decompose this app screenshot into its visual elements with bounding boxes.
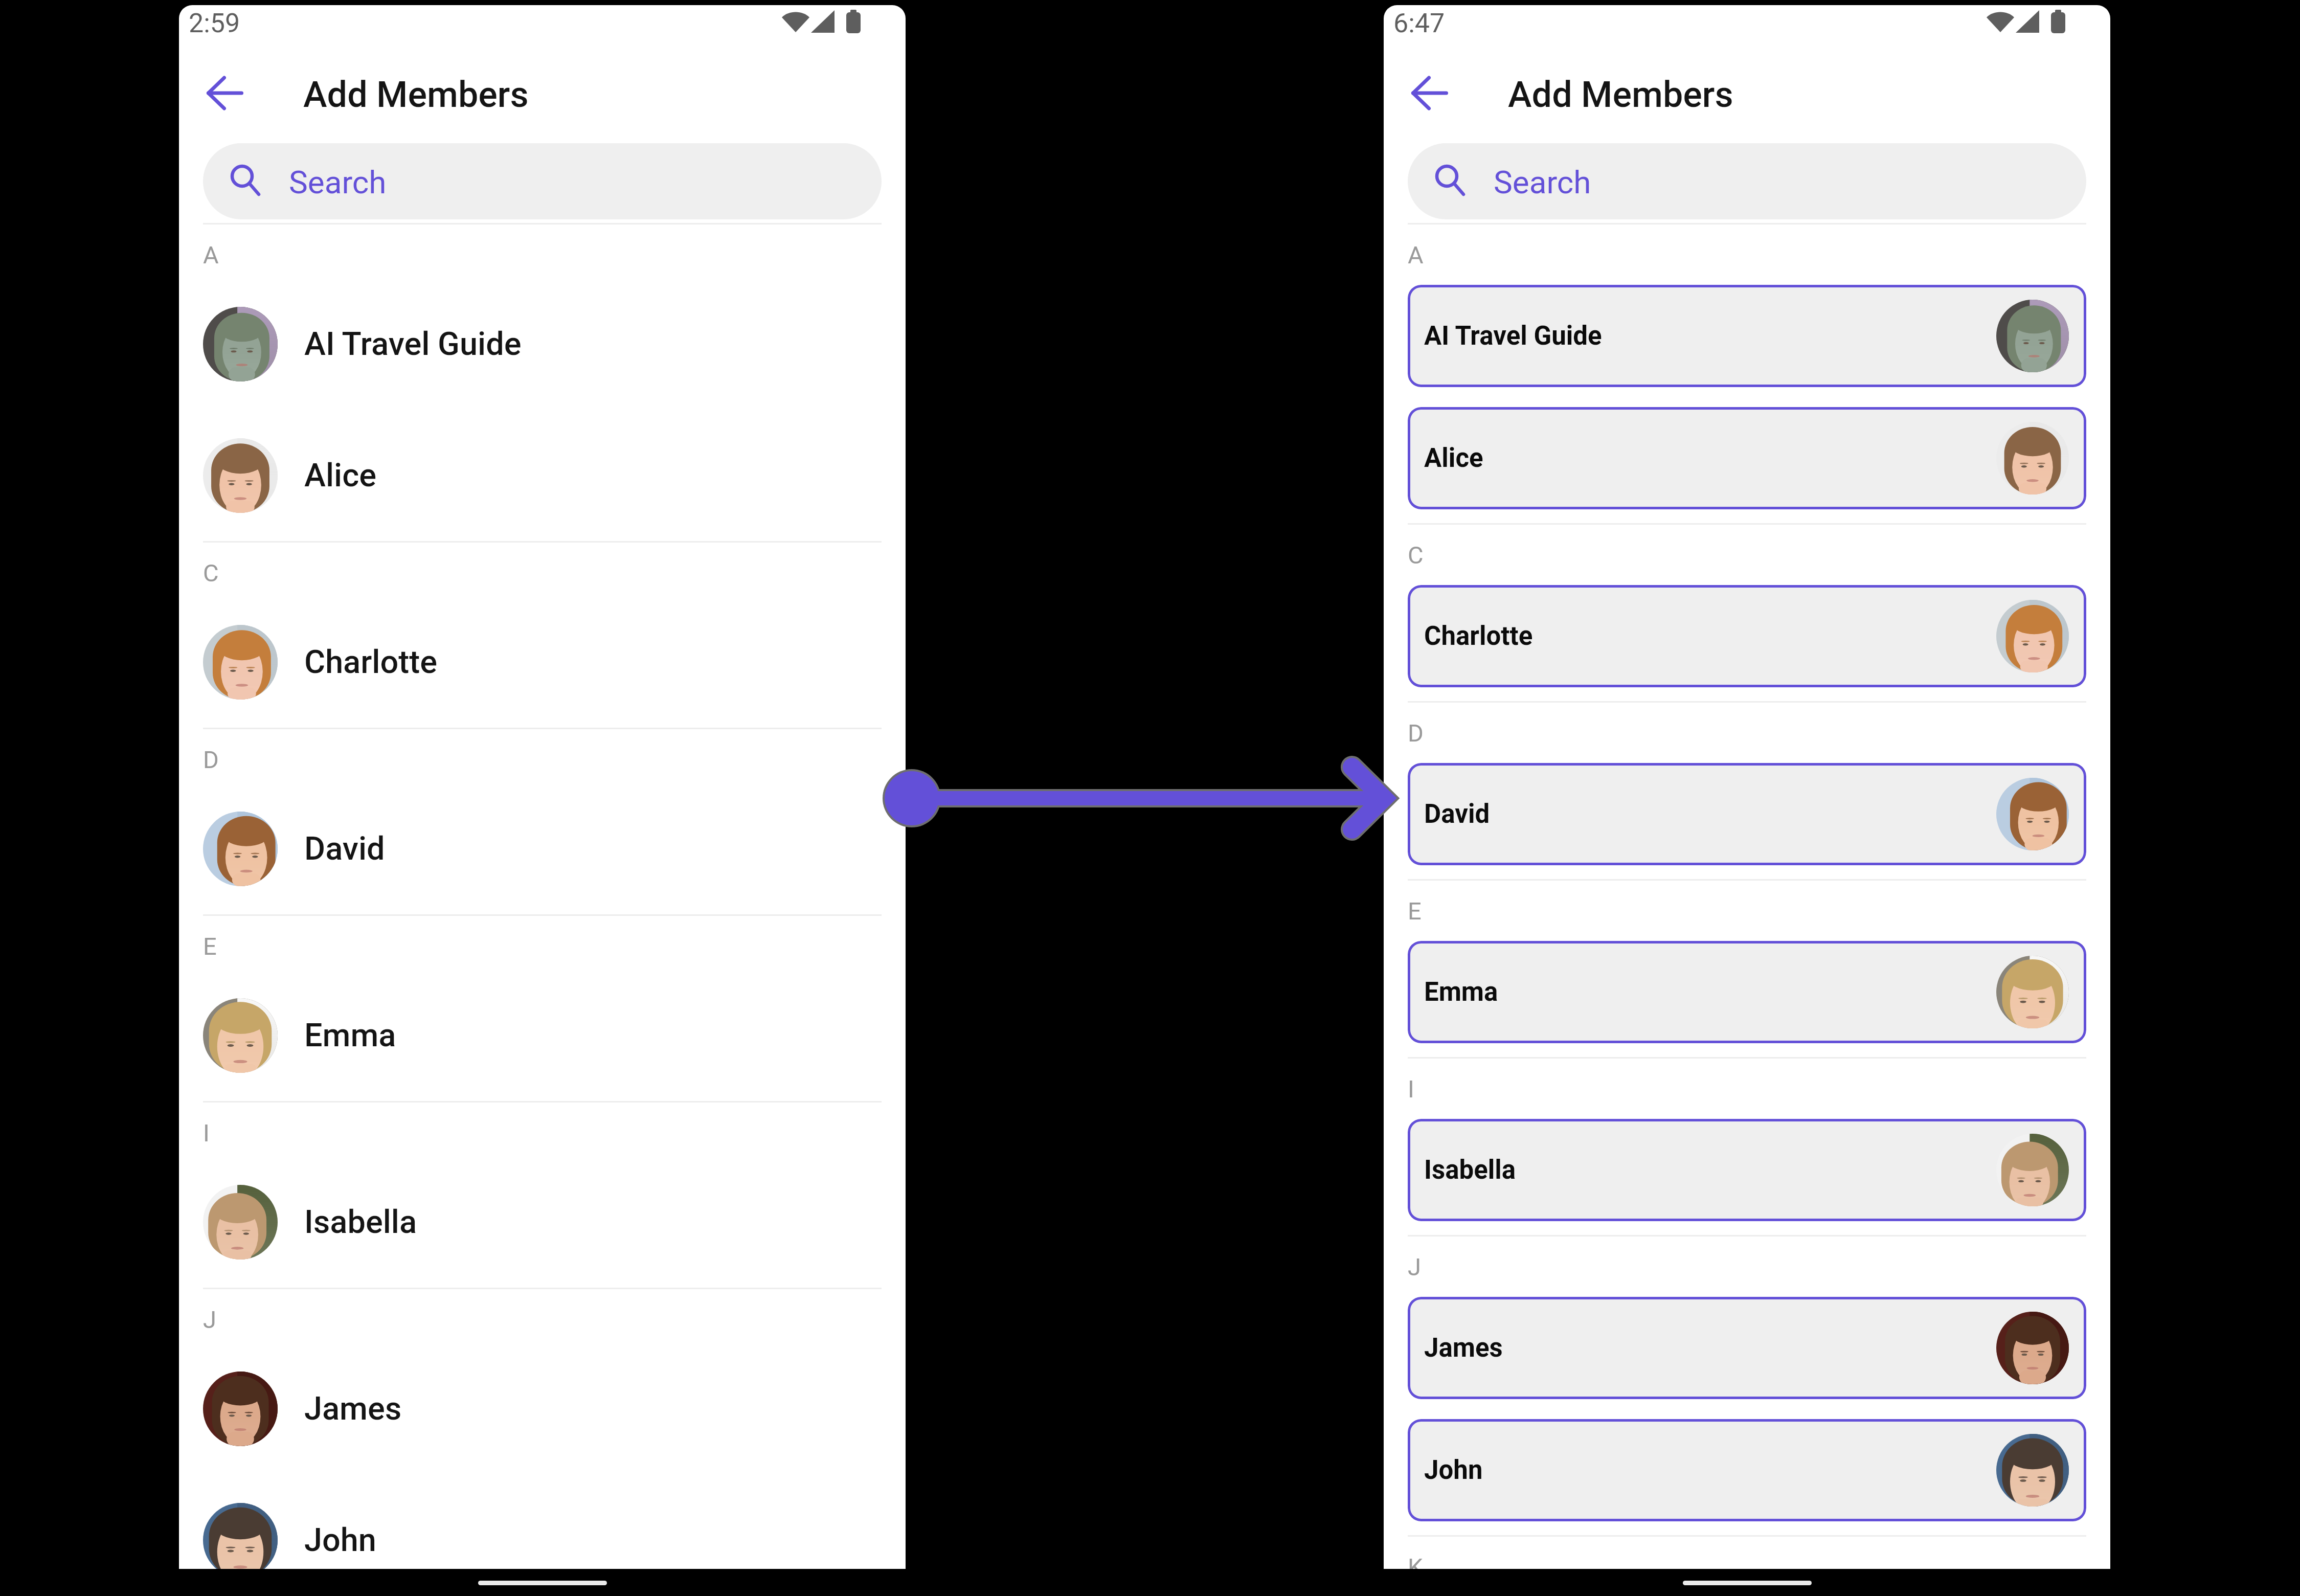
staticText: 6:47 — [1393, 8, 1445, 39]
staticText: J — [203, 1306, 216, 1334]
staticText: James — [304, 1390, 402, 1428]
staticText: E — [203, 932, 217, 960]
button[interactable]: AI Travel Guide — [179, 278, 906, 410]
staticText: C — [203, 559, 219, 587]
staticText: Search — [289, 164, 387, 201]
button[interactable]: David — [1408, 763, 2086, 865]
staticText: I — [1408, 1075, 1414, 1103]
button[interactable]: Isabella — [1408, 1119, 2086, 1221]
button[interactable]: Emma — [179, 970, 906, 1101]
staticText: David — [1424, 799, 1490, 829]
button[interactable]: Alice — [1408, 407, 2086, 509]
button[interactable]: Charlotte — [179, 596, 906, 728]
staticText: A — [1408, 241, 1424, 269]
staticText: E — [1408, 897, 1422, 925]
staticText: AI Travel Guide — [304, 325, 522, 363]
button[interactable]: Alice — [179, 410, 906, 541]
staticText: A — [203, 241, 219, 269]
staticText: 2:59 — [189, 8, 240, 39]
button[interactable]: John — [179, 1474, 906, 1569]
staticText: David — [304, 830, 385, 868]
button[interactable]: David — [179, 783, 906, 914]
staticText: Add Members — [1508, 74, 1733, 116]
staticText: John — [304, 1521, 376, 1559]
staticText: Charlotte — [1424, 621, 1533, 651]
staticText: Alice — [304, 457, 376, 494]
staticText: J — [1408, 1253, 1421, 1281]
button[interactable]: Isabella — [179, 1156, 906, 1288]
staticText: James — [1424, 1333, 1503, 1363]
staticText: Emma — [304, 1017, 396, 1054]
staticText: John — [1424, 1455, 1483, 1486]
staticText: Alice — [1424, 443, 1483, 474]
staticText: K — [1408, 1553, 1423, 1569]
staticText: Isabella — [304, 1203, 417, 1241]
staticText: Charlotte — [304, 643, 438, 681]
staticText: AI Travel Guide — [1424, 321, 1602, 351]
button[interactable]: Search — [1408, 143, 2086, 219]
button[interactable]: Charlotte — [1408, 585, 2086, 687]
staticText: Emma — [1424, 977, 1498, 1007]
staticText: C — [1408, 541, 1424, 569]
button[interactable]: Emma — [1408, 941, 2086, 1043]
button[interactable]: Back — [1394, 63, 1453, 123]
button[interactable]: James — [179, 1343, 906, 1474]
button[interactable]: Back — [189, 63, 249, 123]
staticText: Isabella — [1424, 1155, 1516, 1185]
staticText: I — [203, 1119, 210, 1147]
staticText: Add Members — [303, 74, 529, 116]
button[interactable]: Search — [203, 143, 882, 219]
staticText: D — [1408, 719, 1424, 747]
staticText: Search — [1494, 164, 1591, 201]
button[interactable]: AI Travel Guide — [1408, 285, 2086, 387]
button[interactable]: James — [1408, 1297, 2086, 1399]
button[interactable]: John — [1408, 1419, 2086, 1521]
staticText: D — [203, 746, 219, 774]
